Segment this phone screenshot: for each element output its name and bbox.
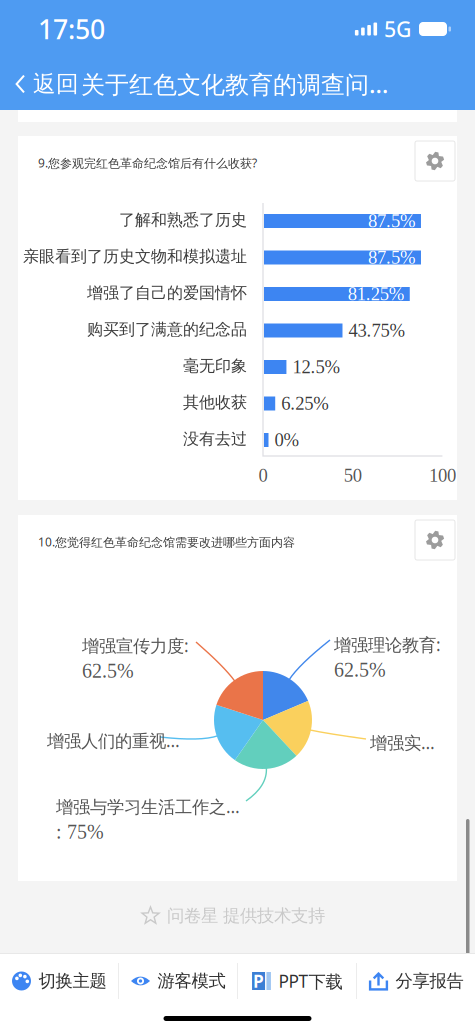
staticText: 50 xyxy=(344,465,362,486)
staticText: 81.25% xyxy=(348,284,405,304)
staticText: 5G xyxy=(384,15,412,43)
button[interactable]: 分享报告 xyxy=(357,954,475,1008)
staticText: 了解和熟悉了历史 xyxy=(119,210,247,230)
staticText: 毫无印象 xyxy=(183,356,247,376)
staticText: : 75% xyxy=(56,821,104,843)
staticText: 关于红色文化教育的调查问… xyxy=(81,68,388,100)
button[interactable]: P xyxy=(238,954,356,1008)
staticText: 17:50 xyxy=(38,11,105,47)
staticText: 增强了自己的爱国情怀 xyxy=(87,283,247,303)
staticText: 增强人们的重视… xyxy=(47,729,180,752)
staticText: 亲眼看到了历史文物和模拟遗址 xyxy=(23,247,247,266)
staticText: 0 xyxy=(258,465,267,486)
staticText: 增强宣传力度: xyxy=(82,634,189,657)
staticText: 6.25% xyxy=(281,393,329,414)
staticText: 返回 xyxy=(33,70,79,98)
button[interactable]: 图表设置 xyxy=(415,141,455,181)
staticText: 62.5% xyxy=(334,659,386,681)
staticText: PPT下载 xyxy=(278,969,342,992)
staticText: 其他收获 xyxy=(183,393,247,412)
button[interactable]: 切换主题 xyxy=(0,954,118,1008)
staticText: 43.75% xyxy=(348,320,405,341)
staticText: 10.您觉得红色革命纪念馆需要改进哪些方面内容 xyxy=(38,534,295,550)
staticText: P xyxy=(253,969,264,992)
staticText: 0% xyxy=(274,430,299,450)
button[interactable]: 返回 xyxy=(0,58,81,110)
staticText: 增强理论教育: xyxy=(334,633,441,656)
staticText: 87.5% xyxy=(368,247,416,268)
staticText: 游客模式 xyxy=(157,970,225,992)
staticText: 增强实… xyxy=(370,731,435,754)
staticText: 12.5% xyxy=(292,357,340,377)
staticText: 62.5% xyxy=(82,660,134,682)
staticText: 增强与学习生活工作之… xyxy=(56,795,240,818)
staticText: 87.5% xyxy=(368,211,416,231)
staticText: 100 xyxy=(429,465,456,486)
staticText: 没有去过 xyxy=(183,429,247,449)
staticText: 分享报告 xyxy=(395,970,463,992)
staticText: 9.您参观完红色革命纪念馆后有什么收获? xyxy=(38,155,257,171)
button[interactable]: 游客模式 xyxy=(119,954,237,1008)
staticText: 切换主题 xyxy=(38,970,106,992)
staticText: 购买到了满意的纪念品 xyxy=(87,320,247,339)
staticText: 问卷星 提供技术支持 xyxy=(167,905,325,926)
button[interactable]: 图表设置 xyxy=(415,520,455,560)
